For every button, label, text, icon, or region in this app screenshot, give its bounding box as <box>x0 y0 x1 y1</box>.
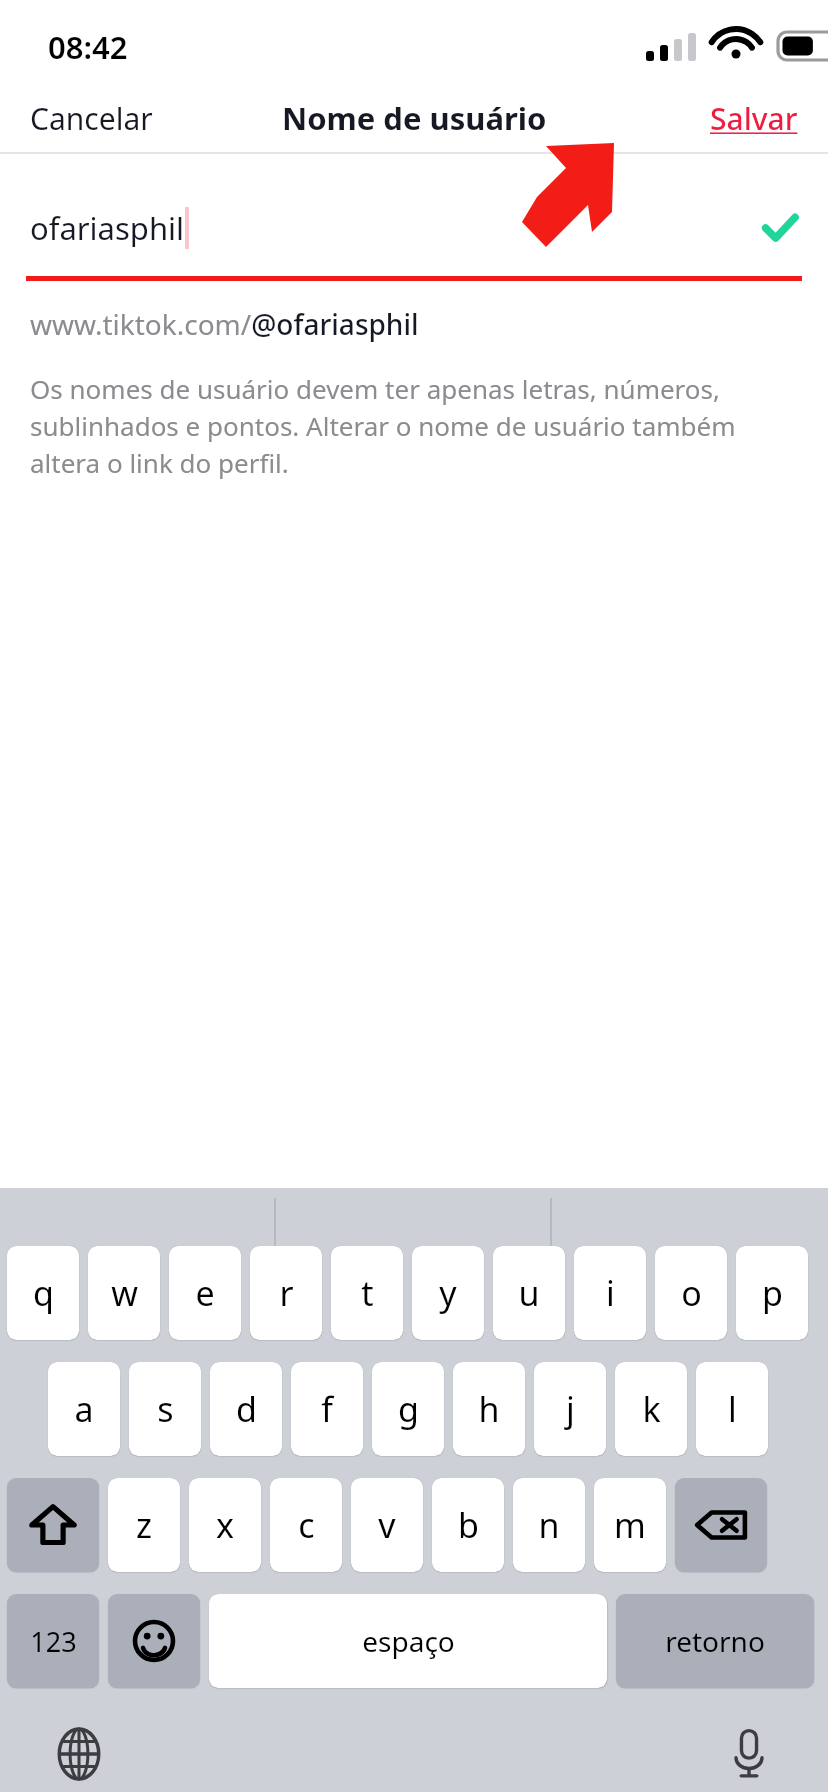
button[interactable]: 123 <box>7 1594 99 1688</box>
button[interactable]: p <box>736 1246 808 1340</box>
button[interactable]: Emoji <box>108 1594 200 1688</box>
staticText: p <box>762 1270 783 1316</box>
staticText: Salvar <box>710 98 798 139</box>
staticText: 123 <box>30 1623 77 1660</box>
button[interactable]: b <box>432 1478 504 1572</box>
button[interactable]: h <box>453 1362 525 1456</box>
staticText: c <box>298 1502 315 1548</box>
button[interactable]: d <box>210 1362 282 1456</box>
staticText: 08:42 <box>48 26 128 68</box>
staticText: j <box>566 1386 575 1432</box>
staticText: e <box>195 1270 215 1316</box>
button[interactable]: retorno <box>616 1594 814 1688</box>
staticText: Os nomes de usuário devem ter apenas let… <box>30 371 798 481</box>
staticText: n <box>538 1502 560 1548</box>
staticText: i <box>606 1270 615 1316</box>
button[interactable]: c <box>270 1478 342 1572</box>
button[interactable]: j <box>534 1362 606 1456</box>
staticText: retorno <box>665 1622 765 1660</box>
staticText: k <box>642 1386 661 1432</box>
button[interactable]: Backspace <box>675 1478 767 1572</box>
staticText: r <box>279 1270 294 1316</box>
staticText: t <box>361 1270 374 1316</box>
button[interactable]: m <box>594 1478 666 1572</box>
button[interactable]: espaço <box>209 1594 607 1688</box>
button[interactable]: e <box>169 1246 241 1340</box>
button[interactable]: l <box>696 1362 768 1456</box>
button[interactable]: y <box>412 1246 484 1340</box>
staticText: Nome de usuário <box>282 97 547 139</box>
staticText: ofariasphil <box>30 207 185 249</box>
staticText: f <box>321 1386 333 1432</box>
staticText: v <box>378 1502 396 1548</box>
button[interactable]: o <box>655 1246 727 1340</box>
staticText: Cancelar <box>30 98 153 139</box>
button[interactable]: g <box>372 1362 444 1456</box>
button[interactable]: Shift <box>7 1478 99 1572</box>
button[interactable]: Change keyboard <box>46 1721 112 1787</box>
button[interactable]: ofariasphil <box>30 196 798 260</box>
staticText: s <box>157 1386 174 1432</box>
staticText: www.tiktok.com/@ofariasphil <box>30 305 419 343</box>
button[interactable]: i <box>574 1246 646 1340</box>
staticText: q <box>33 1270 54 1316</box>
button[interactable]: x <box>189 1478 261 1572</box>
button[interactable]: Cancelar <box>0 86 183 151</box>
staticText: d <box>236 1386 257 1432</box>
button[interactable]: a <box>48 1362 120 1456</box>
staticText: x <box>216 1502 234 1548</box>
staticText: g <box>398 1386 419 1432</box>
button[interactable]: k <box>615 1362 687 1456</box>
button[interactable]: v <box>351 1478 423 1572</box>
button[interactable]: r <box>250 1246 322 1340</box>
staticText: m <box>614 1502 646 1548</box>
staticText: h <box>478 1386 500 1432</box>
staticText: w <box>111 1270 138 1316</box>
button[interactable]: w <box>88 1246 160 1340</box>
staticText: espaço <box>362 1622 455 1660</box>
staticText: l <box>728 1386 737 1432</box>
button[interactable]: u <box>493 1246 565 1340</box>
button[interactable]: s <box>129 1362 201 1456</box>
staticText: o <box>681 1270 702 1316</box>
button[interactable]: Salvar <box>680 86 828 151</box>
staticText: z <box>136 1502 152 1548</box>
staticText: b <box>458 1502 479 1548</box>
button[interactable]: Dictation <box>716 1721 782 1787</box>
button[interactable]: z <box>108 1478 180 1572</box>
button[interactable]: q <box>7 1246 79 1340</box>
staticText: u <box>518 1270 540 1316</box>
staticText: y <box>439 1270 457 1316</box>
staticText: a <box>74 1386 94 1432</box>
button[interactable]: n <box>513 1478 585 1572</box>
button[interactable]: f <box>291 1362 363 1456</box>
button[interactable]: t <box>331 1246 403 1340</box>
